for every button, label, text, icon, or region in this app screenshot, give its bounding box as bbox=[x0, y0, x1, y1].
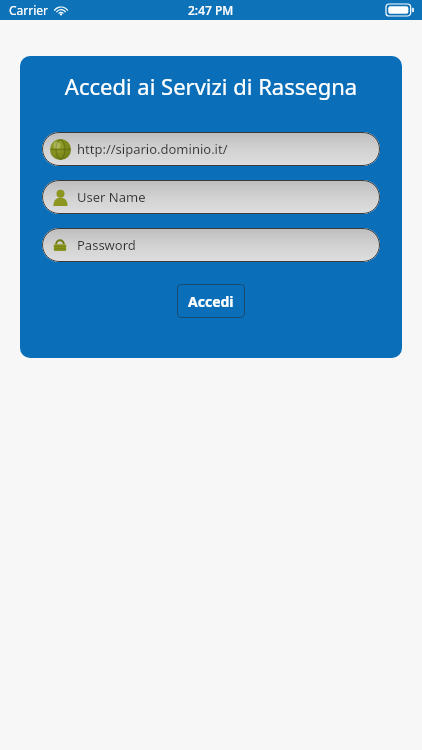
staticText: User Name bbox=[77, 188, 146, 206]
staticText: Accedi bbox=[188, 292, 234, 311]
button[interactable]: Password bbox=[42, 228, 380, 262]
button[interactable]: User Name bbox=[42, 180, 380, 214]
staticText: 2:47 PM bbox=[188, 2, 234, 18]
staticText: http://sipario.dominio.it/ bbox=[77, 140, 228, 158]
button[interactable]: http://sipario.dominio.it/ bbox=[42, 132, 380, 166]
staticText: Carrier bbox=[9, 2, 49, 18]
staticText: Accedi ai Servizi di Rassegna bbox=[20, 71, 402, 101]
staticText: Password bbox=[77, 236, 136, 254]
button[interactable]: Accedi bbox=[177, 284, 245, 318]
